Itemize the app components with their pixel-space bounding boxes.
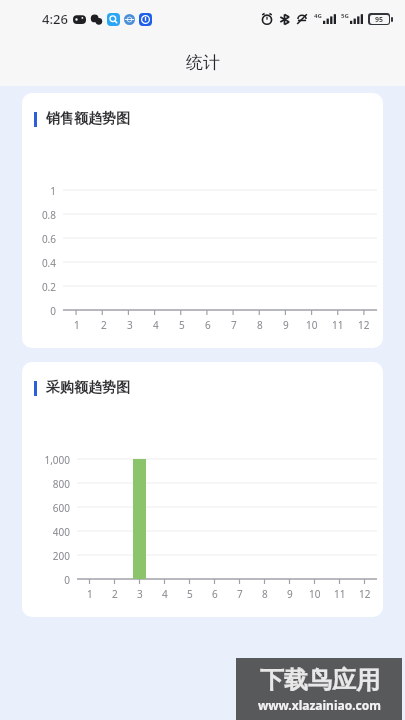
- staticText: www.xlazainiao.com: [258, 697, 381, 713]
- staticText: 4: [153, 318, 159, 332]
- staticText: 0: [64, 573, 70, 585]
- button[interactable]: 采购额趋势图: [22, 362, 383, 617]
- staticText: 0.4: [41, 256, 56, 268]
- staticText: 2: [101, 318, 107, 332]
- staticText: 3: [127, 318, 133, 332]
- staticText: 7: [237, 587, 243, 601]
- staticText: 800: [52, 477, 70, 489]
- staticText: 4:26: [42, 10, 68, 28]
- staticText: 9: [287, 587, 293, 601]
- staticText: 8: [257, 318, 263, 332]
- staticText: 11: [332, 318, 344, 332]
- staticText: 400: [52, 525, 70, 537]
- button[interactable]: 销售额趋势图: [22, 93, 383, 348]
- staticText: 2: [112, 587, 118, 601]
- staticText: 8: [262, 587, 268, 601]
- staticText: 10: [309, 587, 321, 601]
- staticText: 12: [359, 587, 371, 601]
- staticText: 12: [358, 318, 370, 332]
- staticText: 1: [87, 587, 93, 601]
- staticText: 5: [187, 587, 193, 601]
- staticText: 6: [205, 318, 211, 332]
- staticText: 下载鸟应用: [260, 665, 380, 695]
- staticText: 3: [137, 587, 143, 601]
- staticText: 7: [231, 318, 237, 332]
- staticText: 4: [162, 587, 168, 601]
- staticText: 5G: [341, 12, 349, 20]
- staticText: 95: [375, 15, 384, 24]
- staticText: 10: [306, 318, 318, 332]
- staticText: 0.8: [41, 208, 56, 220]
- staticText: 销售额趋势图: [46, 110, 130, 128]
- staticText: 5: [179, 318, 185, 332]
- staticText: 统计: [186, 52, 220, 73]
- staticText: 0.2: [41, 280, 56, 292]
- staticText: 200: [52, 549, 70, 561]
- staticText: 0: [50, 304, 56, 316]
- staticText: 600: [52, 501, 70, 513]
- staticText: 9: [283, 318, 289, 332]
- staticText: 采购额趋势图: [46, 379, 130, 397]
- staticText: 1: [74, 318, 80, 332]
- staticText: 1: [50, 184, 56, 196]
- staticText: 6: [212, 587, 218, 601]
- staticText: 1,000: [44, 453, 70, 465]
- staticText: 0.6: [41, 232, 56, 244]
- staticText: 4G: [314, 12, 322, 20]
- staticText: 11: [334, 587, 346, 601]
